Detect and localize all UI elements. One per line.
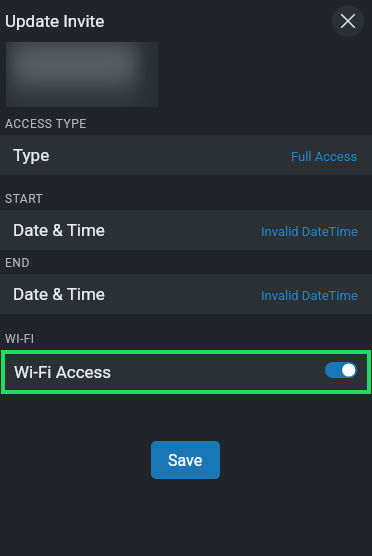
button[interactable]: Wi-Fi Access — [5, 354, 367, 390]
button[interactable]: Date & Time — [0, 210, 372, 250]
button[interactable]: Save — [151, 441, 220, 479]
button[interactable]: Close — [332, 5, 364, 37]
staticText: START — [5, 192, 44, 206]
staticText: Save — [168, 451, 203, 470]
staticText: Full Access — [291, 149, 358, 164]
staticText: END — [5, 256, 30, 270]
staticText: Date & Time — [13, 284, 105, 304]
staticText: WI-FI — [5, 332, 35, 346]
staticText: ACCESS TYPE — [5, 117, 87, 131]
button[interactable]: Type — [0, 135, 372, 175]
staticText: Wi-Fi Access — [14, 362, 112, 382]
staticText: Date & Time — [13, 220, 105, 240]
staticText: Invalid DateTime — [261, 224, 358, 239]
staticText: Invalid DateTime — [261, 288, 358, 303]
staticText: Type — [13, 145, 50, 165]
staticText: Update Invite — [5, 11, 105, 31]
button[interactable]: Date & Time — [0, 274, 372, 314]
